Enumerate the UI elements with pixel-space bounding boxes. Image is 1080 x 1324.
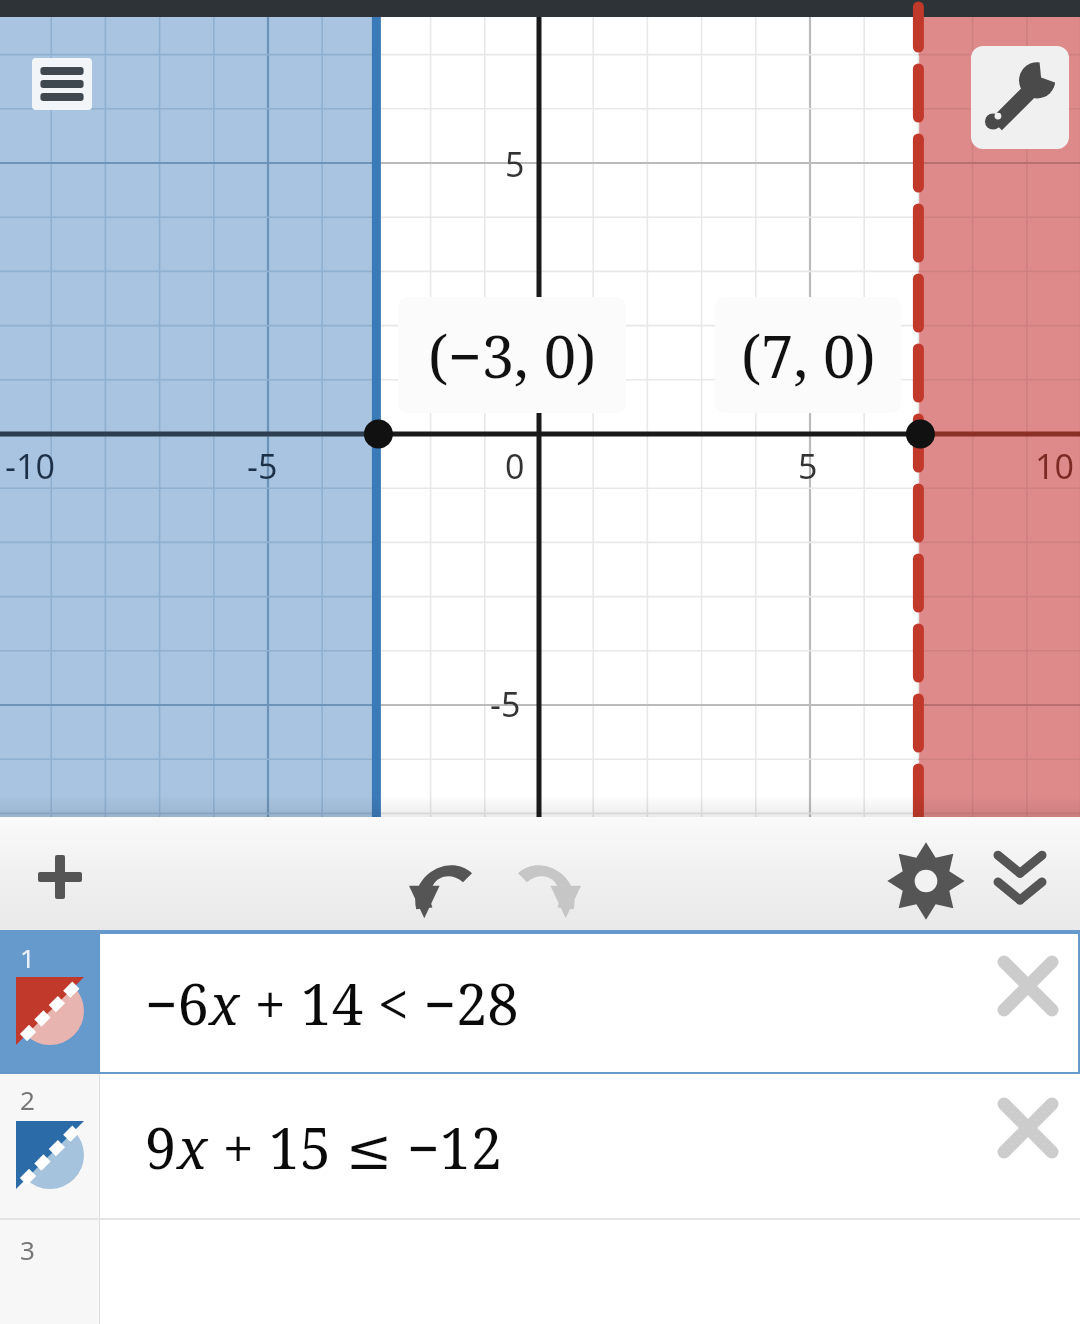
staticText: x: [209, 965, 240, 1041]
staticText: -5: [247, 443, 278, 489]
staticText: 1: [20, 940, 35, 975]
staticText: 3: [20, 1232, 35, 1267]
staticText: + 15 ≤ −12: [208, 1109, 503, 1185]
staticText: + 14 < −28: [240, 965, 519, 1041]
button[interactable]: Collapse: [978, 839, 1062, 923]
staticText: (−3, 0): [428, 316, 597, 395]
button[interactable]: (7, 0): [715, 297, 901, 413]
button[interactable]: Delete expression: [990, 1090, 1066, 1166]
button[interactable]: Menu: [32, 58, 92, 110]
staticText: 10: [1035, 443, 1074, 489]
button[interactable]: 1: [0, 932, 1080, 1074]
staticText: -10: [5, 443, 55, 489]
staticText: -5: [490, 681, 521, 727]
button[interactable]: 2: [0, 1074, 1080, 1220]
button[interactable]: Redo: [500, 839, 590, 929]
staticText: 5: [505, 141, 525, 187]
staticText: −6: [145, 965, 209, 1041]
button[interactable]: (−3, 0): [398, 297, 626, 413]
staticText: 9: [145, 1109, 177, 1185]
staticText: x: [177, 1109, 208, 1185]
button[interactable]: 3: [0, 1220, 1080, 1324]
button[interactable]: Undo: [400, 839, 490, 929]
button[interactable]: Add expression: [20, 837, 100, 917]
button[interactable]: Settings tools: [971, 46, 1069, 149]
staticText: 2: [20, 1082, 35, 1117]
staticText: 0: [505, 443, 525, 489]
button[interactable]: Graph settings: [884, 839, 968, 923]
staticText: (7, 0): [741, 316, 876, 395]
staticText: 5: [798, 443, 818, 489]
button[interactable]: Delete expression: [990, 948, 1066, 1024]
